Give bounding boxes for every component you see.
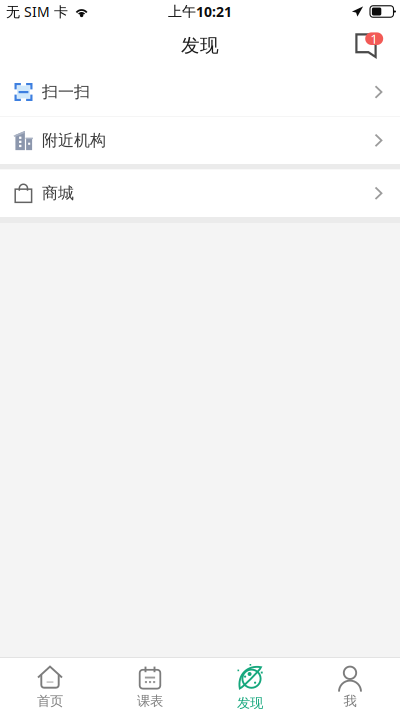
button[interactable]: 我 [300, 658, 400, 711]
staticText: 扫一扫 [42, 82, 90, 102]
staticText: 附近机构 [42, 130, 106, 150]
button[interactable]: 课表 [100, 658, 200, 711]
staticText: 商城 [42, 183, 74, 203]
staticText: 1 [370, 30, 378, 48]
staticText: 发现 [181, 34, 219, 57]
staticText: 课表 [137, 693, 163, 709]
button[interactable]: 发现 [200, 658, 300, 711]
staticText: 发现 [237, 695, 263, 711]
staticText: 首页 [37, 693, 63, 709]
button[interactable]: 消息 [344, 23, 388, 68]
button[interactable]: 扫一扫 [0, 68, 400, 116]
staticText: 10:21 [196, 2, 232, 21]
staticText: 我 [343, 693, 356, 709]
button[interactable]: 附近机构 [0, 117, 400, 164]
button[interactable]: 首页 [0, 658, 100, 711]
staticText: 无 SIM 卡 [6, 2, 68, 21]
button[interactable]: 商城 [0, 169, 400, 217]
staticText: 上午 [168, 3, 196, 20]
